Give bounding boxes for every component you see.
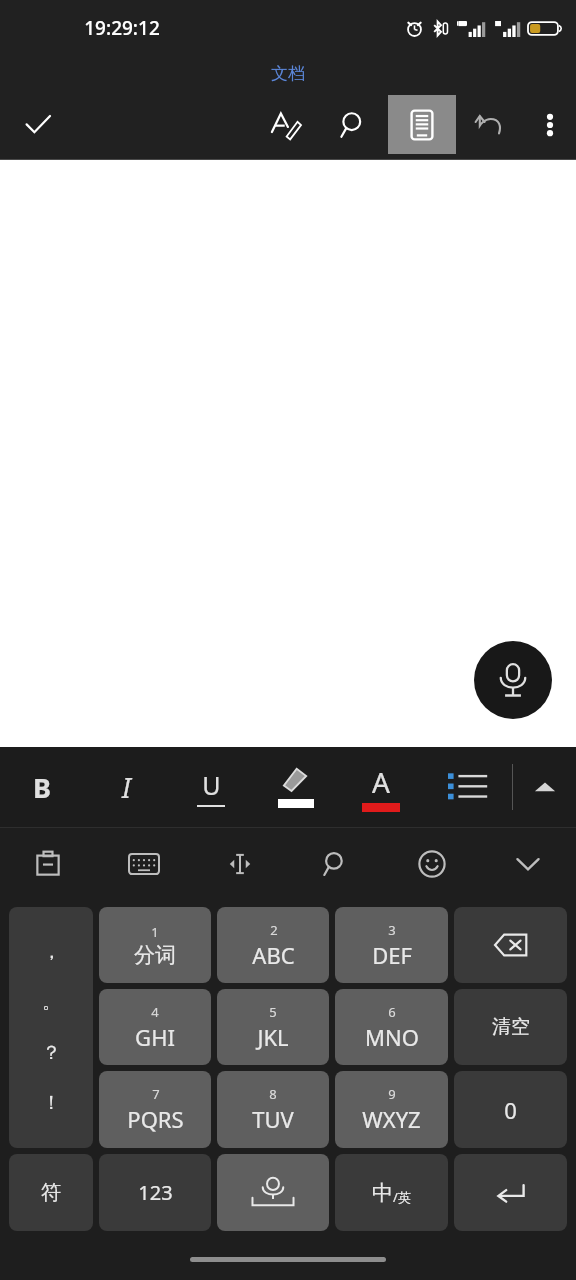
staticText: 0 [504,1095,517,1125]
button[interactable]: Italic [84,747,168,827]
staticText: U [202,768,221,802]
staticText: 19:29:12 [84,15,160,41]
button[interactable]: Search [320,90,388,159]
staticText: 2 [270,921,278,939]
staticText: 。 [42,990,61,1014]
staticText: ABC [252,940,295,970]
staticText: 分词 [134,942,176,968]
staticText: ？ [42,1041,61,1065]
staticText: MNO [365,1022,419,1052]
staticText: 5 [269,1003,277,1021]
staticText: B [33,769,51,806]
staticText: WXYZ [362,1104,421,1134]
button[interactable]: More options [524,90,576,159]
button[interactable]: Voice input space [217,1154,329,1231]
staticText: GHI [135,1022,175,1052]
staticText: 1 [151,923,159,941]
button[interactable]: Voice input [474,641,552,719]
button[interactable]: 9 [335,1071,448,1148]
button[interactable]: 符 [9,1154,93,1231]
staticText: ， [42,940,61,964]
staticText: I [122,769,131,806]
button[interactable]: Clipboard [0,828,96,900]
staticText: 文档 [271,63,305,84]
button[interactable]: Hide keyboard [480,828,576,900]
staticText: 中 [372,1180,393,1206]
button[interactable]: 8 [217,1071,329,1148]
button[interactable]: Collapse [513,747,576,827]
staticText: ！ [42,1091,61,1115]
button[interactable]: Underline [168,747,253,827]
staticText: DEF [372,940,412,970]
button[interactable]: Undo [456,90,524,159]
staticText: TUV [252,1104,294,1134]
button[interactable]: Bold [0,747,84,827]
staticText: JKL [257,1022,289,1052]
button[interactable]: 1 [99,907,211,983]
button[interactable]: Search [288,828,384,900]
button[interactable]: Punctuation [9,907,93,1148]
staticText: 7 [152,1085,160,1103]
button[interactable]: Keyboard layout [96,828,192,900]
staticText: PQRS [127,1104,184,1134]
staticText: 4 [151,1003,159,1021]
button[interactable]: 5 [217,989,329,1065]
button[interactable]: 2 [217,907,329,983]
button[interactable]: Backspace [454,907,567,983]
staticText: 9 [388,1085,396,1103]
staticText: 符 [41,1180,61,1205]
button[interactable]: Enter [454,1154,567,1231]
staticText: /英 [393,1188,411,1206]
button[interactable]: 7 [99,1071,211,1148]
button[interactable]: 清空 [454,989,567,1065]
button[interactable]: Done [0,90,76,159]
staticText: 3 [388,921,396,939]
button[interactable]: Switch Chinese English [335,1154,448,1231]
button[interactable]: Emoji [384,828,480,900]
staticText: 6 [388,1003,396,1021]
button[interactable]: 6 [335,989,448,1065]
button[interactable]: Read view [388,95,456,154]
staticText: 8 [269,1085,277,1103]
button[interactable]: 4 [99,989,211,1065]
button[interactable]: 0 [454,1071,567,1148]
button[interactable]: Font color [338,747,423,827]
button[interactable]: Bullet list [423,747,512,827]
staticText: 清空 [492,1015,530,1039]
button[interactable]: Highlight [253,747,338,827]
staticText: 123 [138,1179,173,1206]
button[interactable]: 123 [99,1154,211,1231]
button[interactable]: 3 [335,907,448,983]
button[interactable]: Font style [252,90,320,159]
button[interactable]: Move cursor [192,828,288,900]
staticText: A [372,763,390,801]
